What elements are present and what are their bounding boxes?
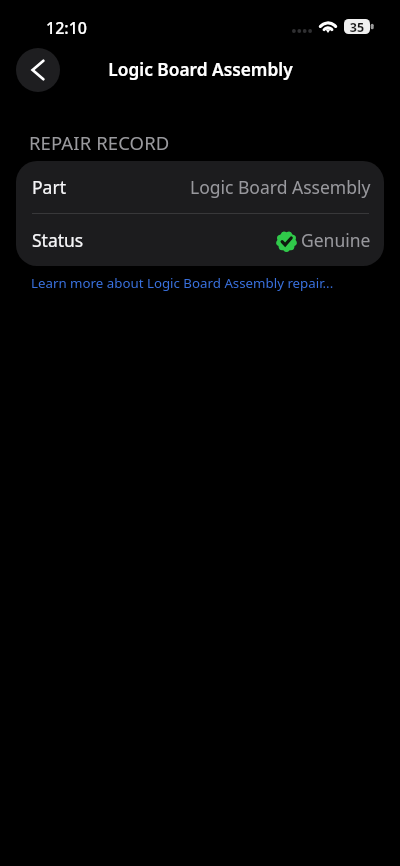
- staticText: Genuine: [301, 228, 371, 252]
- staticText: REPAIR RECORD: [29, 130, 170, 155]
- button[interactable]: Learn more about Logic Board Assembly re…: [31, 274, 334, 292]
- staticText: 35: [347, 19, 367, 36]
- staticText: Logic Board Assembly: [108, 58, 293, 82]
- staticText: 12:10: [46, 17, 87, 39]
- button[interactable]: Back: [16, 48, 60, 92]
- button[interactable]: Status: [16, 214, 384, 266]
- button[interactable]: Part: [16, 161, 384, 213]
- staticText: Logic Board Assembly: [190, 175, 371, 199]
- staticText: Part: [32, 175, 66, 199]
- staticText: Status: [32, 228, 84, 252]
